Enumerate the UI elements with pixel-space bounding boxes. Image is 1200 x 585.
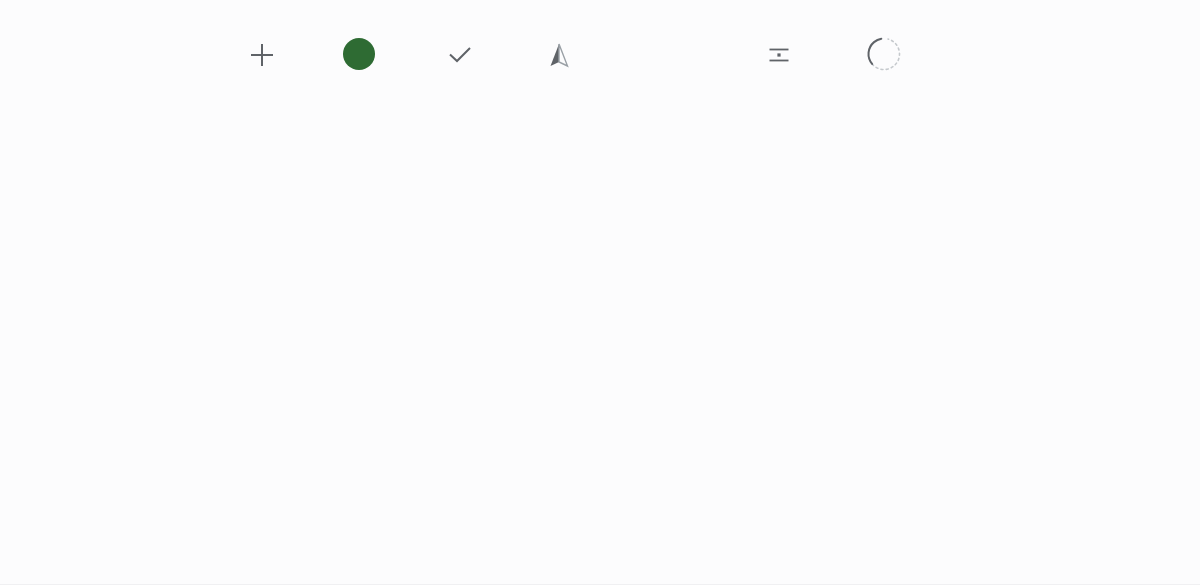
button[interactable]: Navigate (535, 31, 583, 79)
button[interactable]: Colour (335, 30, 383, 78)
button[interactable]: Done (436, 31, 484, 79)
button[interactable]: Add (238, 31, 286, 79)
button[interactable]: Tune (755, 31, 803, 79)
button[interactable]: Loading (860, 30, 908, 78)
